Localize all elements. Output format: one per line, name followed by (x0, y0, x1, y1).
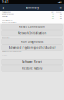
button[interactable]: Restore Factory (2, 66, 62, 71)
staticText: Diagnostics (2, 37, 10, 39)
button[interactable]: Software Reset (2, 59, 62, 65)
button[interactable]: Network Initialisation (2, 30, 62, 36)
staticText: ‹ (2, 4, 4, 11)
staticText: Maintenance / system specific (2, 50, 22, 52)
staticText: ▮ (61, 1, 62, 3)
staticText: Alloc (51, 11, 54, 13)
staticText: Reset Connection (19, 25, 45, 28)
staticText: Total devices (2, 11, 11, 13)
staticText: Advanced / system specific (Audio) (8, 46, 55, 49)
staticText: Special features (2, 19, 13, 21)
staticText: Summary (25, 6, 38, 9)
button[interactable]: Back (1, 4, 6, 11)
staticText: 08 (52, 15, 54, 17)
staticText: and processes (2, 13, 14, 15)
button[interactable]: Advanced / system specific (Audio) (2, 45, 62, 50)
staticText: System (2, 54, 7, 56)
staticText: Restore Factory (22, 67, 42, 70)
button[interactable]: Menu (58, 4, 63, 11)
staticText: Regular (56, 11, 62, 13)
button[interactable]: Reset Connection (2, 24, 62, 30)
staticText: Network Initialisation (17, 31, 46, 35)
staticText: 12 (52, 13, 54, 15)
staticText: Device control options (2, 22, 17, 23)
button[interactable]: Run Diagnostics (2, 39, 62, 44)
staticText: 9:41 (2, 0, 9, 4)
staticText: specific (2, 15, 8, 17)
staticText: 04 (52, 18, 54, 19)
staticText: Run Diagnostics (21, 40, 43, 43)
staticText: ▁▄▆ (57, 1, 60, 3)
staticText: 21 (60, 15, 62, 17)
staticText: ≡ (59, 6, 61, 9)
staticText: 34 (60, 13, 62, 15)
staticText: Software Reset (22, 60, 42, 64)
staticText: 65 (60, 18, 62, 19)
